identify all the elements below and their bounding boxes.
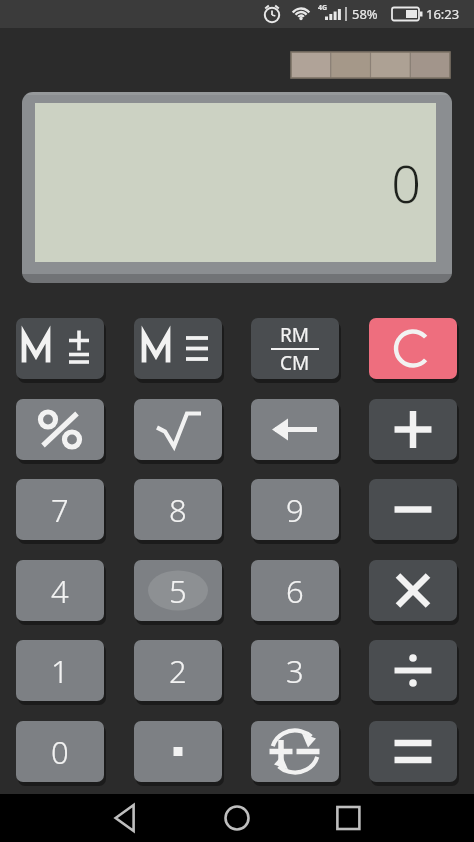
staticText: 1 <box>51 650 69 692</box>
button[interactable]: Divide <box>369 640 457 701</box>
button[interactable]: 7 <box>16 479 104 540</box>
button[interactable]: 1 <box>16 640 104 701</box>
button[interactable]: 4 <box>16 560 104 621</box>
staticText: 8 <box>169 489 187 531</box>
button[interactable]: Decimal point <box>134 721 222 782</box>
button[interactable]: Clear <box>369 318 457 379</box>
button[interactable]: Multiply <box>369 560 457 621</box>
button[interactable]: Square root <box>134 399 222 460</box>
staticText: 2 <box>169 650 187 692</box>
button[interactable]: 2 <box>134 640 222 701</box>
button[interactable]: Memory plus minus <box>16 318 104 379</box>
staticText: 0 <box>51 731 69 773</box>
button[interactable]: Percent <box>16 399 104 460</box>
staticText: CM <box>280 350 310 376</box>
button[interactable]: 0 <box>16 721 104 782</box>
button[interactable]: 5 <box>134 560 222 621</box>
staticText: 7 <box>51 489 69 531</box>
button[interactable]: 9 <box>251 479 339 540</box>
staticText: 4 <box>51 570 69 612</box>
button[interactable]: Minus <box>369 479 457 540</box>
staticText: 9 <box>286 489 304 531</box>
staticText: 4G <box>318 3 328 13</box>
staticText: 0 <box>391 147 421 218</box>
button[interactable]: Plus <box>369 399 457 460</box>
button[interactable]: RM CM <box>251 318 339 379</box>
staticText: 6 <box>286 570 304 612</box>
button[interactable]: 3 <box>251 640 339 701</box>
button[interactable]: 6 <box>251 560 339 621</box>
staticText: 58% <box>352 5 378 23</box>
staticText: 5 <box>169 570 187 612</box>
staticText: 3 <box>286 650 304 692</box>
button[interactable]: 8 <box>134 479 222 540</box>
button[interactable]: Memory recall list <box>134 318 222 379</box>
button[interactable]: Backspace <box>251 399 339 460</box>
staticText: 16:23 <box>426 5 460 23</box>
staticText: RM <box>280 322 310 348</box>
button[interactable]: Equals <box>369 721 457 782</box>
button[interactable]: Toggle sign <box>251 721 339 782</box>
